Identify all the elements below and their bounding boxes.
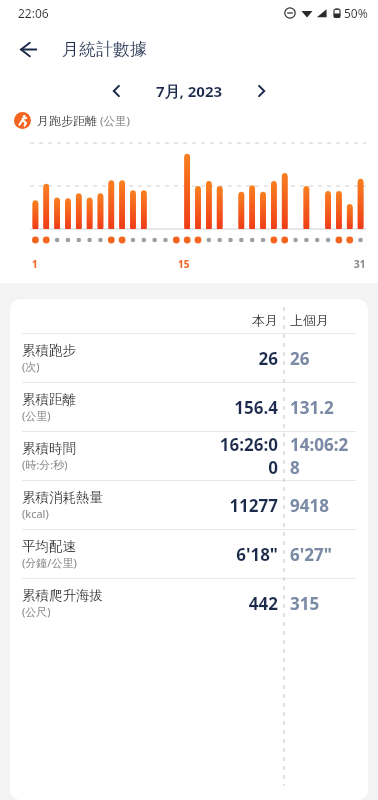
staticText: (時:分:秒): [22, 457, 68, 472]
staticText: 月統計數據: [62, 39, 147, 60]
button[interactable]: 累積距離: [22, 383, 356, 431]
staticText: 累積爬升海拔: [22, 587, 103, 604]
staticText: 上個月: [290, 312, 356, 328]
staticText: 7月, 2023: [134, 81, 244, 101]
button[interactable]: 平均配速: [22, 530, 356, 578]
staticText: 156.4: [216, 396, 278, 419]
staticText: 月跑步距離: [37, 113, 97, 128]
button[interactable]: 累積跑步: [22, 334, 356, 382]
staticText: 9418: [290, 494, 356, 517]
staticText: 442: [216, 592, 278, 615]
button[interactable]: 累積消耗熱量: [22, 481, 356, 529]
staticText: 131.2: [290, 396, 356, 419]
staticText: 14:06:28: [290, 433, 356, 479]
staticText: (公里): [22, 408, 51, 423]
staticText: 26: [290, 347, 356, 370]
staticText: 1: [32, 257, 38, 271]
staticText: 累積跑步: [22, 342, 76, 359]
staticText: 22:06: [18, 5, 49, 21]
staticText: (公里): [97, 113, 130, 129]
button[interactable]: 累積爬升海拔: [22, 579, 356, 627]
staticText: 26: [216, 347, 278, 370]
staticText: 累積時間: [22, 440, 76, 457]
staticText: 31: [354, 257, 366, 271]
staticText: (kcal): [22, 506, 49, 521]
staticText: 315: [290, 592, 356, 615]
staticText: 15: [178, 257, 190, 271]
staticText: 11277: [216, 494, 278, 517]
staticText: (次): [22, 359, 40, 374]
staticText: 6'18": [216, 543, 278, 566]
button[interactable]: 累積時間: [22, 432, 356, 480]
staticText: 累積距離: [22, 391, 76, 408]
staticText: 50%: [344, 5, 368, 21]
staticText: (公尺): [22, 604, 51, 619]
staticText: 累積消耗熱量: [22, 489, 103, 506]
button[interactable]: Back: [8, 30, 46, 68]
staticText: 16:26:00: [216, 433, 278, 479]
button[interactable]: Previous month: [100, 74, 134, 108]
staticText: (分鐘/公里): [22, 555, 77, 570]
staticText: 本月: [216, 312, 278, 328]
button[interactable]: Next month: [244, 74, 278, 108]
staticText: 平均配速: [22, 538, 76, 555]
staticText: 6'27": [290, 543, 356, 566]
